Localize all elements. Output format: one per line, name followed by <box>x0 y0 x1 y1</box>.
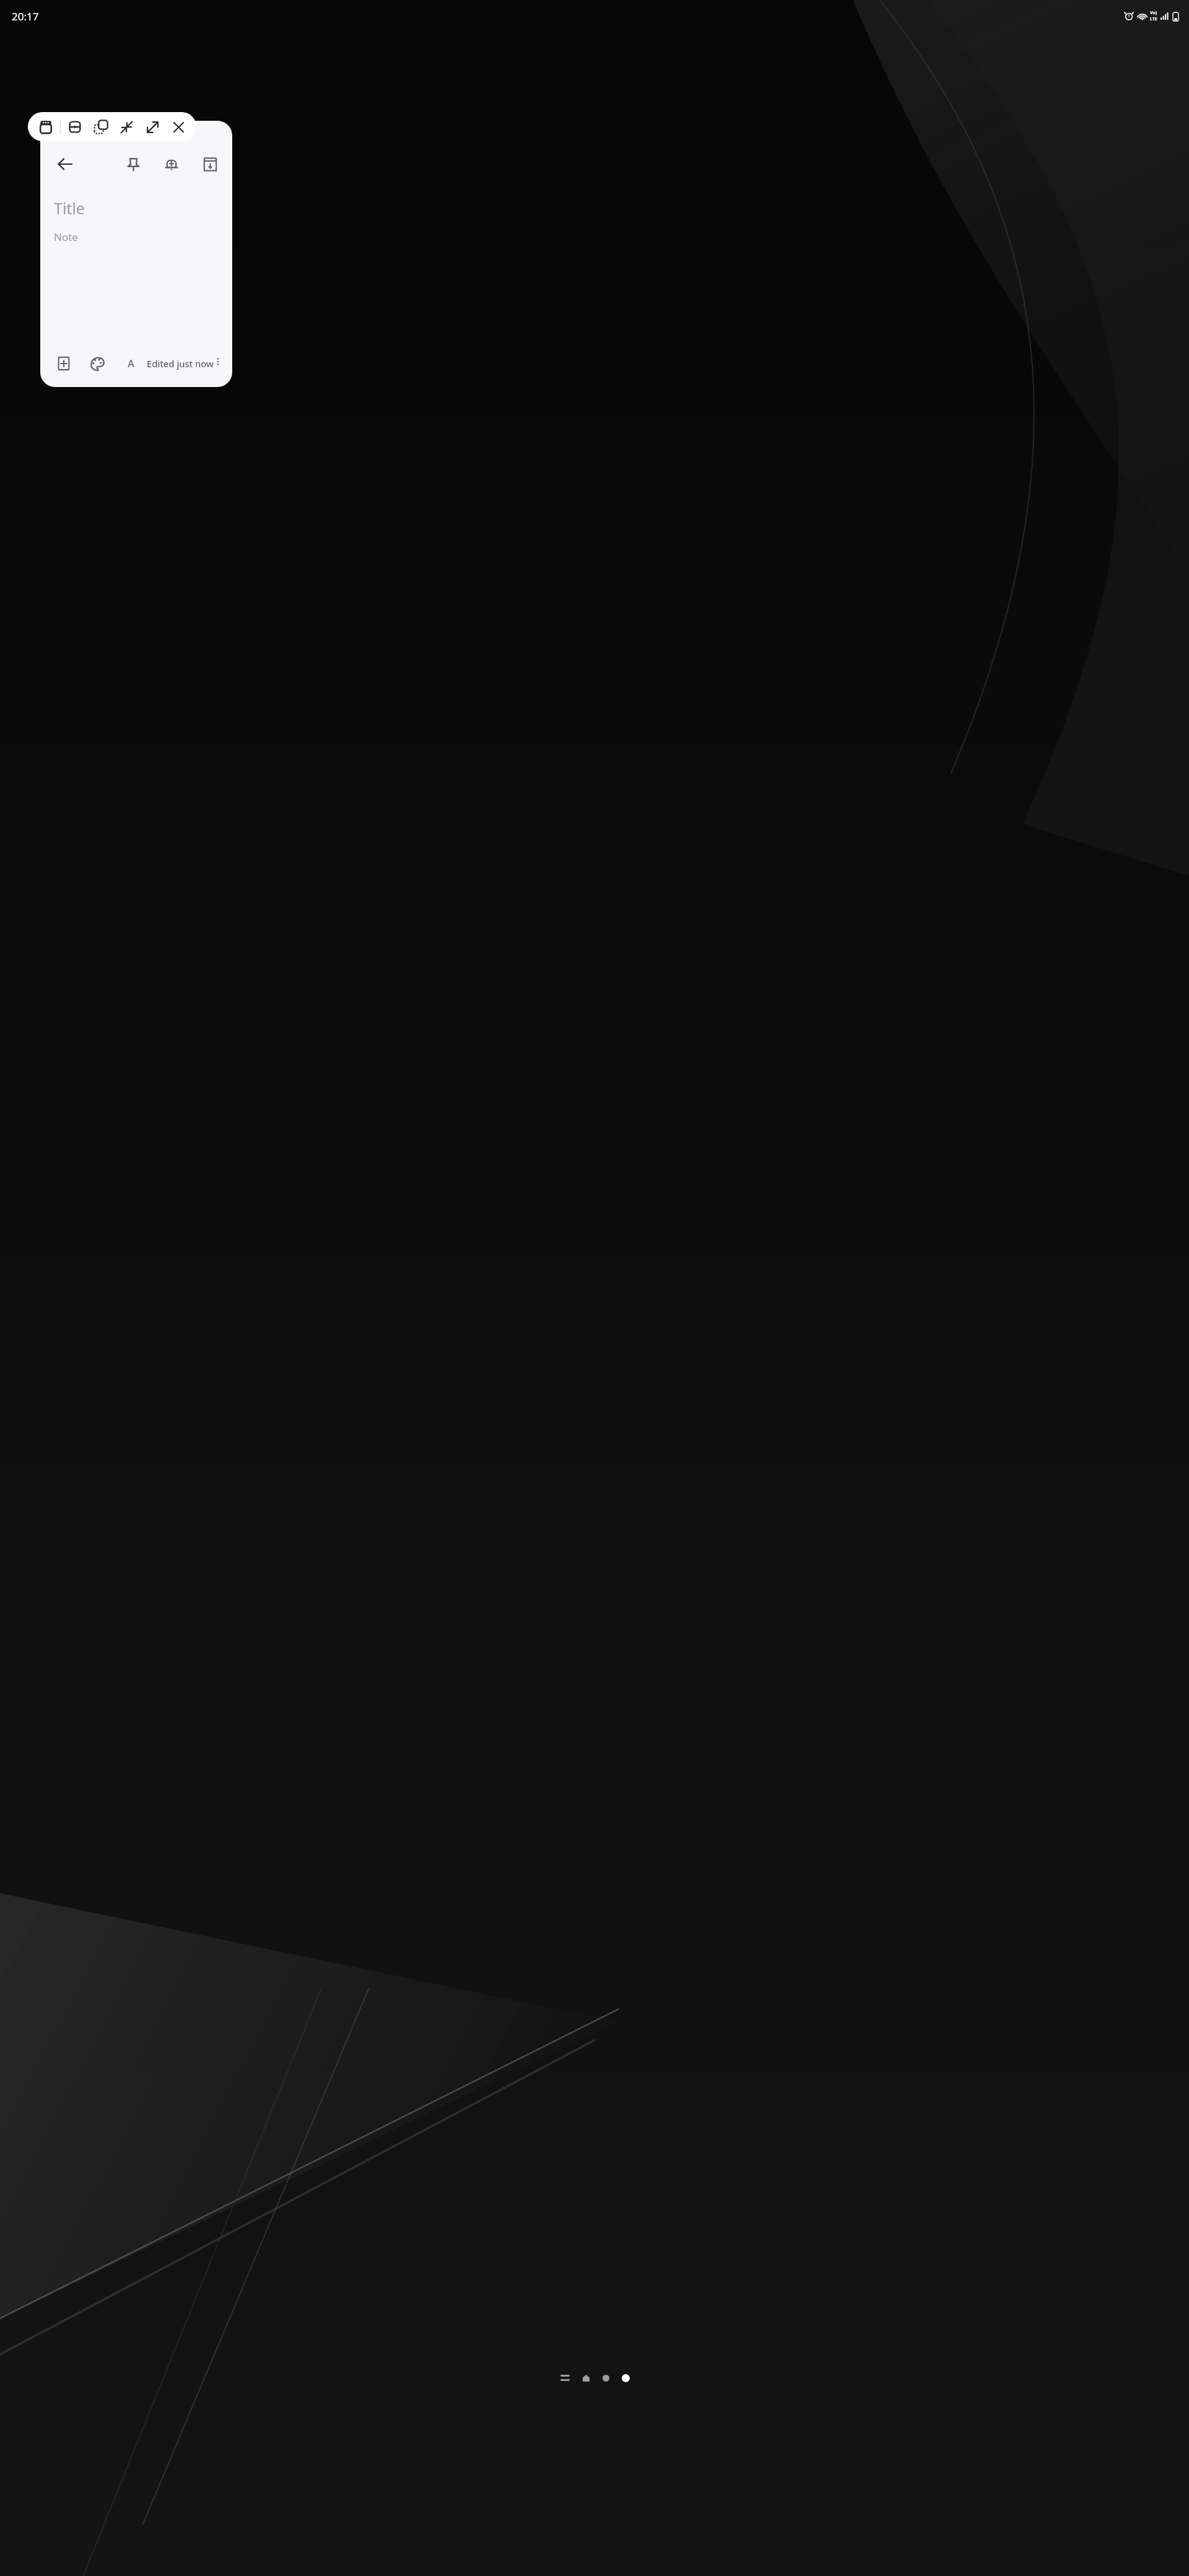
staticText: 20:17 <box>12 9 39 24</box>
button[interactable]: Maximise <box>141 115 164 139</box>
button[interactable]: Split screen <box>63 115 87 139</box>
staticText: LTE <box>1150 16 1157 22</box>
staticText: Vo) <box>1150 10 1157 16</box>
button[interactable]: Formatting <box>118 351 143 376</box>
button[interactable]: Page 2 <box>599 2372 612 2384</box>
button[interactable]: Pin note <box>120 150 147 178</box>
button[interactable]: Archive <box>196 150 224 178</box>
button[interactable]: Page 3, current <box>619 2372 632 2384</box>
button[interactable]: Restore window <box>89 115 113 139</box>
staticText: Title <box>54 198 85 219</box>
staticText: A <box>128 357 134 370</box>
staticText: Edited just now <box>147 357 214 370</box>
button[interactable]: App handle menu <box>34 115 58 139</box>
button[interactable]: More options <box>214 351 222 376</box>
button[interactable]: All apps <box>557 2372 572 2384</box>
button[interactable]: Add <box>51 351 76 376</box>
button[interactable]: Home page <box>580 2372 592 2384</box>
button[interactable]: Back <box>51 150 79 178</box>
staticText: Note <box>54 230 78 244</box>
button[interactable]: Change colour <box>85 351 110 376</box>
button[interactable]: Close <box>167 115 190 139</box>
button[interactable]: Minimise <box>115 115 138 139</box>
button[interactable]: Add reminder <box>158 150 185 178</box>
